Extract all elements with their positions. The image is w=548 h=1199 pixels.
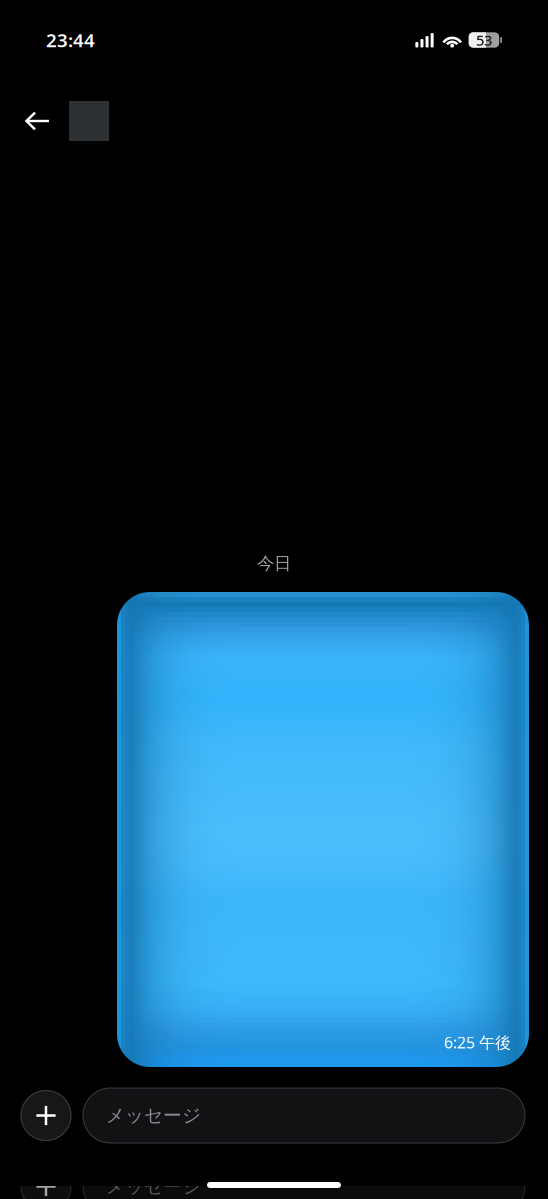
staticText: 23:44 <box>46 28 95 52</box>
button[interactable]: Add attachment <box>21 1161 71 1199</box>
staticText: メッセージ <box>106 1175 201 1198</box>
staticText: 6:25 午後 <box>444 1032 511 1053</box>
button[interactable]: Message text field <box>83 1159 525 1199</box>
staticText: 今日 <box>257 553 291 574</box>
staticText: メッセージ <box>106 1104 201 1127</box>
button[interactable]: Add attachment <box>21 1090 71 1141</box>
button[interactable]: Message text field <box>83 1088 525 1143</box>
staticText: 53 <box>476 30 492 50</box>
button[interactable]: Photo message, 6:25 PM <box>117 592 529 1067</box>
button[interactable]: Back <box>17 101 58 141</box>
